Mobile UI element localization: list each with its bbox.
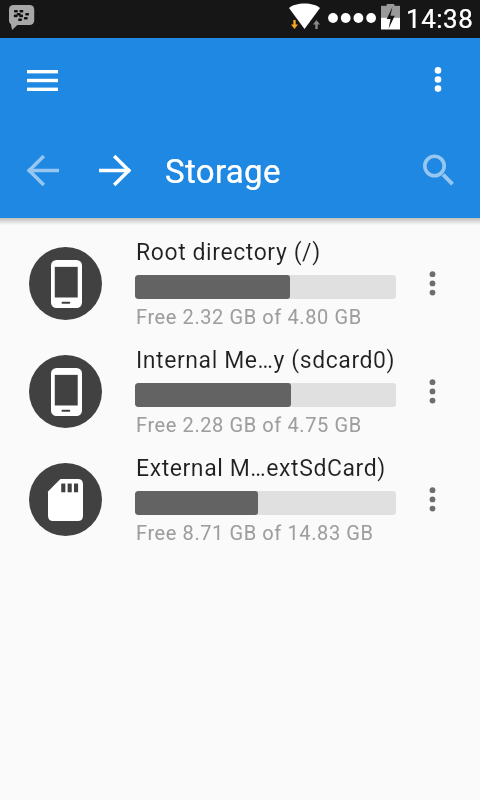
button[interactable]: Item options [408, 475, 456, 523]
button[interactable]: Forward [86, 142, 143, 199]
staticText: External M…extSdCard) [136, 455, 411, 482]
button[interactable]: Back [15, 142, 72, 199]
staticText: Internal Me…y (sdcard0) [136, 347, 411, 374]
button[interactable]: Navigation menu [14, 52, 70, 108]
button[interactable]: Root directory (/) [0, 229, 480, 337]
staticText: Free 8.71 GB of 14.83 GB [136, 521, 374, 544]
staticText: Free 2.32 GB of 4.80 GB [136, 305, 362, 328]
button[interactable]: Search [405, 138, 462, 195]
staticText: Root directory (/) [136, 239, 411, 266]
staticText: Free 2.28 GB of 4.75 GB [136, 413, 362, 436]
staticText: Storage [165, 152, 281, 191]
button[interactable]: Item options [408, 367, 456, 415]
button[interactable]: Internal Me…y (sdcard0) [0, 337, 480, 445]
button[interactable]: Item options [408, 259, 456, 307]
button[interactable]: External M…extSdCard) [0, 445, 480, 553]
button[interactable]: More options [410, 52, 466, 108]
staticText: 14:38 [406, 4, 474, 34]
